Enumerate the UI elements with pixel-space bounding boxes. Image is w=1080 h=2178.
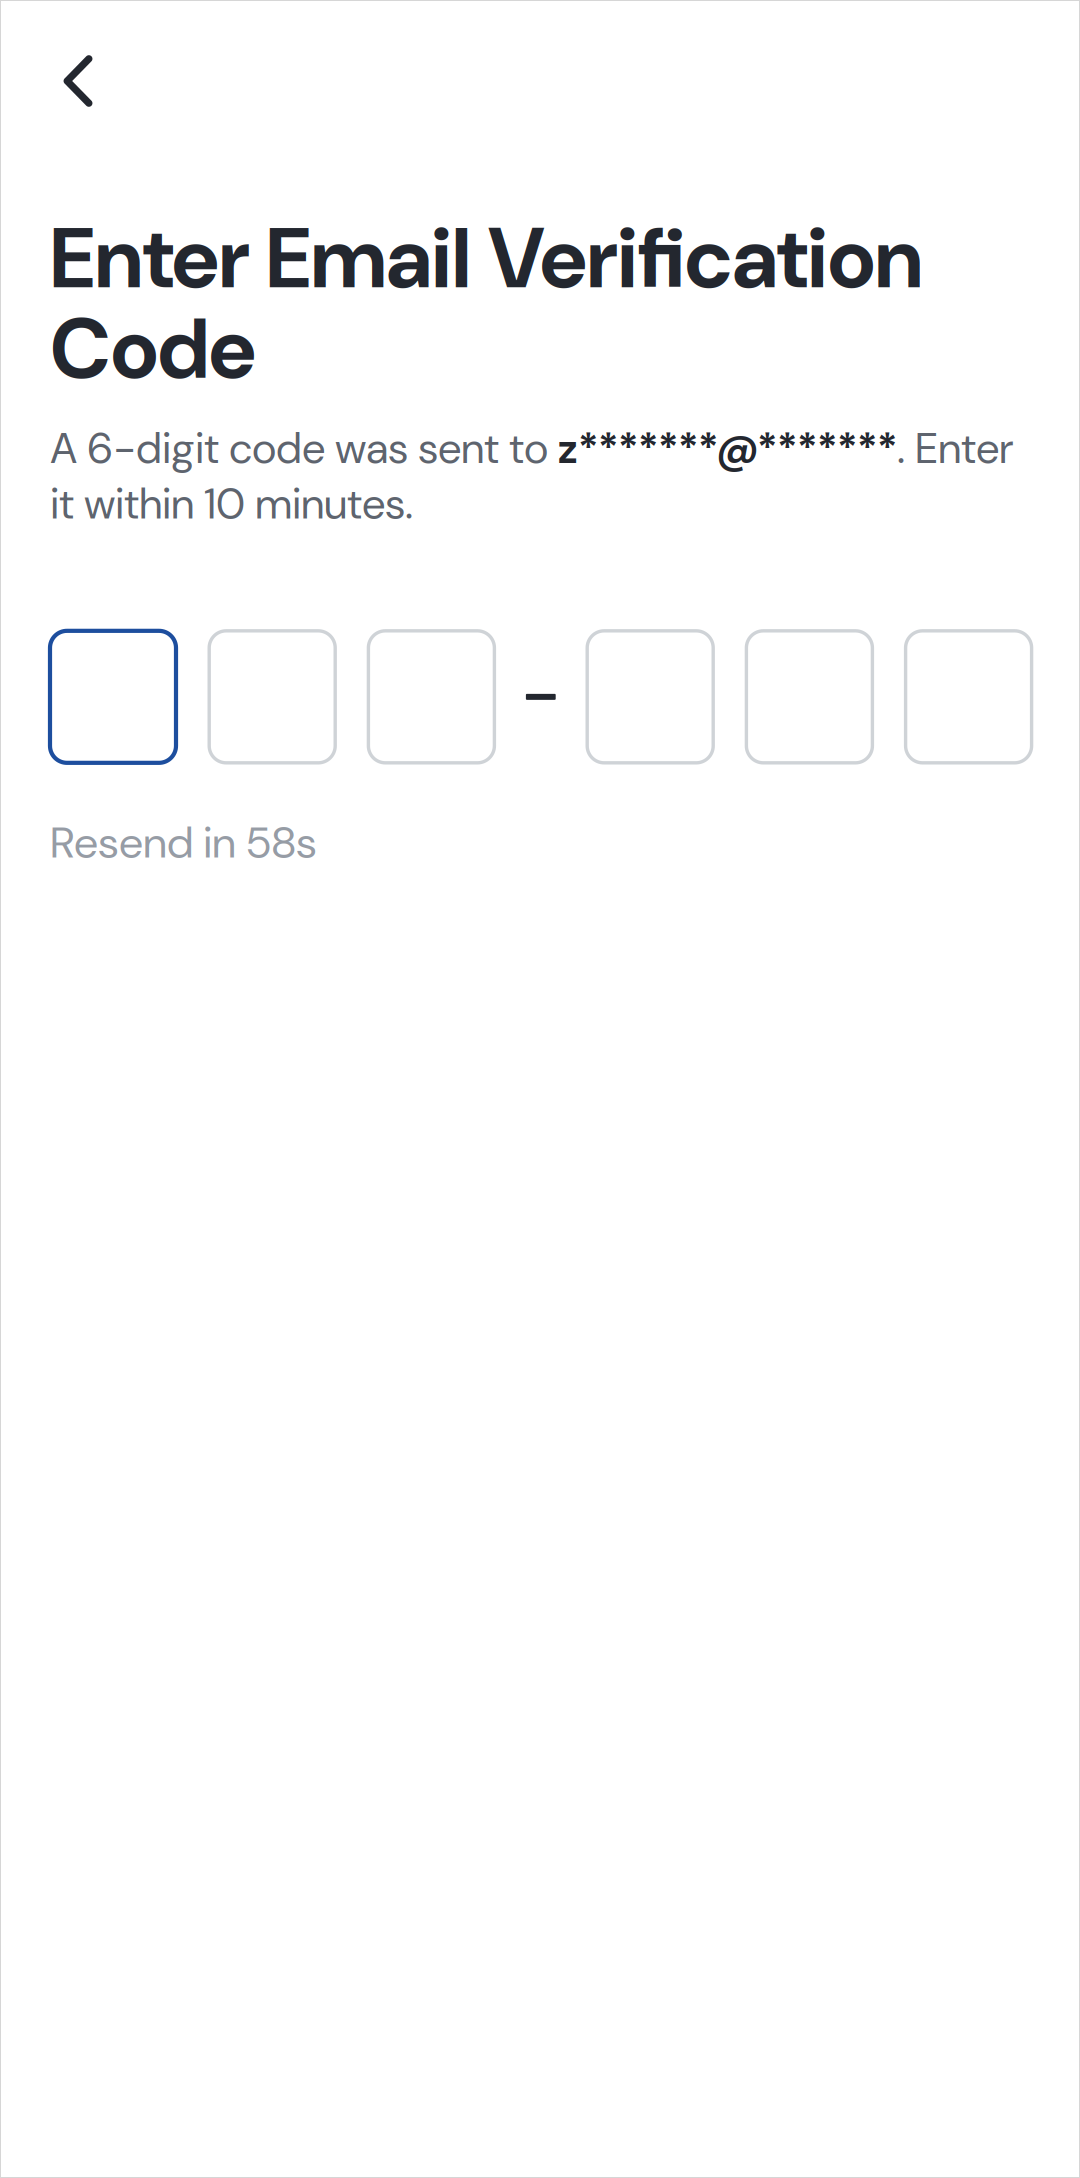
staticText: z*******@******* [558, 422, 897, 476]
staticText: it within 10 minutes. [50, 476, 413, 532]
staticText: A 6-digit code was sent to [50, 421, 558, 476]
button[interactable]: Resend in 58s [50, 814, 317, 871]
staticText: Resend in 58s [50, 814, 317, 871]
staticText: . Enter [897, 421, 1013, 476]
staticText: Enter Email Verification [50, 204, 923, 313]
button[interactable]: Back [50, 19, 140, 149]
staticText: Code [50, 294, 256, 404]
